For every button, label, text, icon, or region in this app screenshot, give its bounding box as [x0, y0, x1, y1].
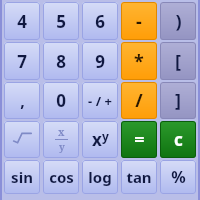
button[interactable]: Square root: [4, 121, 40, 158]
staticText: - / +: [88, 92, 112, 110]
staticText: sin: [11, 167, 33, 187]
button[interactable]: Clear: [160, 121, 196, 158]
staticText: 6: [95, 10, 105, 33]
button[interactable]: sin: [4, 160, 40, 194]
button[interactable]: x to the power y: [82, 121, 118, 158]
staticText: x: [58, 125, 65, 139]
button[interactable]: log: [82, 160, 118, 194]
staticText: 8: [56, 50, 66, 73]
staticText: %: [171, 166, 186, 188]
button[interactable]: Sign change: [82, 82, 118, 119]
staticText: x: [92, 128, 102, 151]
staticText: y: [59, 140, 65, 154]
button[interactable]: Close parenthesis: [160, 2, 196, 40]
staticText: /: [135, 88, 143, 113]
staticText: [: [175, 49, 181, 74]
button[interactable]: 8: [43, 42, 79, 80]
staticText: y: [102, 128, 109, 144]
staticText: 4: [17, 10, 27, 33]
staticText: ]: [175, 88, 181, 113]
staticText: *: [134, 49, 144, 74]
staticText: ,: [20, 90, 25, 112]
button[interactable]: 5: [43, 2, 79, 40]
button[interactable]: Close bracket: [160, 82, 196, 119]
staticText: 7: [17, 50, 27, 73]
button[interactable]: Minus: [121, 2, 157, 40]
button[interactable]: 7: [4, 42, 40, 80]
button[interactable]: 9: [82, 42, 118, 80]
staticText: c: [174, 128, 183, 151]
button[interactable]: 6: [82, 2, 118, 40]
button[interactable]: 0: [43, 82, 79, 119]
button[interactable]: Equals: [121, 121, 157, 158]
button[interactable]: Percent: [160, 160, 196, 194]
staticText: ): [175, 9, 182, 34]
staticText: 0: [56, 89, 66, 112]
staticText: -: [136, 9, 142, 34]
staticText: cos: [49, 167, 74, 187]
button[interactable]: Multiply: [121, 42, 157, 80]
staticText: tan: [126, 167, 152, 187]
button[interactable]: cos: [43, 160, 79, 194]
button[interactable]: Fraction x over y: [43, 121, 79, 158]
staticText: =: [134, 127, 145, 152]
button[interactable]: 4: [4, 2, 40, 40]
button[interactable]: tan: [121, 160, 157, 194]
staticText: 9: [95, 50, 105, 73]
staticText: 5: [56, 10, 66, 33]
button[interactable]: Divide: [121, 82, 157, 119]
staticText: log: [88, 167, 112, 187]
button[interactable]: Decimal point: [4, 82, 40, 119]
button[interactable]: Open bracket: [160, 42, 196, 80]
